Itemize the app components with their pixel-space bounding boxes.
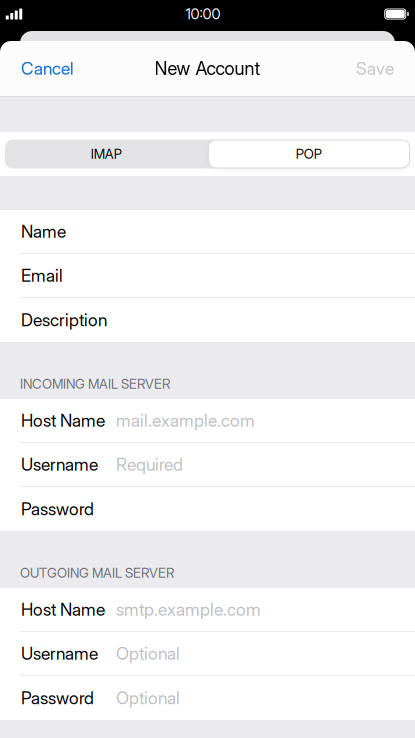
staticText: Host Name bbox=[21, 410, 105, 431]
staticText: smtp.example.com bbox=[116, 599, 261, 620]
staticText: IMAP bbox=[91, 146, 122, 162]
staticText: Password bbox=[21, 687, 94, 708]
button[interactable]: POP bbox=[207, 139, 410, 168]
staticText: mail.example.com bbox=[116, 410, 255, 431]
staticText: Host Name bbox=[21, 599, 105, 620]
staticText: Optional bbox=[116, 643, 180, 664]
staticText: Password bbox=[21, 498, 94, 519]
staticText: Optional bbox=[116, 687, 180, 708]
button[interactable]: Host Name bbox=[0, 399, 415, 443]
button[interactable]: Host Name bbox=[0, 588, 415, 632]
staticText: Save bbox=[356, 58, 394, 79]
staticText: Email bbox=[21, 265, 63, 286]
button[interactable]: IMAP bbox=[5, 139, 207, 168]
staticText: POP bbox=[296, 146, 322, 162]
button[interactable]: Cancel bbox=[0, 41, 95, 95]
button[interactable]: Name bbox=[0, 210, 415, 254]
button[interactable]: Email bbox=[0, 254, 415, 298]
staticText: 10:00 bbox=[185, 5, 220, 23]
button[interactable]: Username bbox=[0, 632, 415, 676]
staticText: Description bbox=[21, 309, 107, 330]
button[interactable]: Save bbox=[335, 41, 415, 95]
button[interactable]: Username bbox=[0, 443, 415, 487]
staticText: INCOMING MAIL SERVER bbox=[20, 376, 170, 392]
staticText: New Account bbox=[154, 57, 260, 79]
staticText: OUTGOING MAIL SERVER bbox=[20, 565, 174, 581]
staticText: Username bbox=[21, 643, 98, 664]
staticText: Required bbox=[116, 454, 183, 475]
button[interactable]: Description bbox=[0, 298, 415, 342]
button[interactable]: Password bbox=[0, 487, 415, 531]
staticText: Cancel bbox=[21, 58, 74, 79]
staticText: Username bbox=[21, 454, 98, 475]
button[interactable]: Password bbox=[0, 676, 415, 720]
staticText: Name bbox=[21, 221, 66, 242]
